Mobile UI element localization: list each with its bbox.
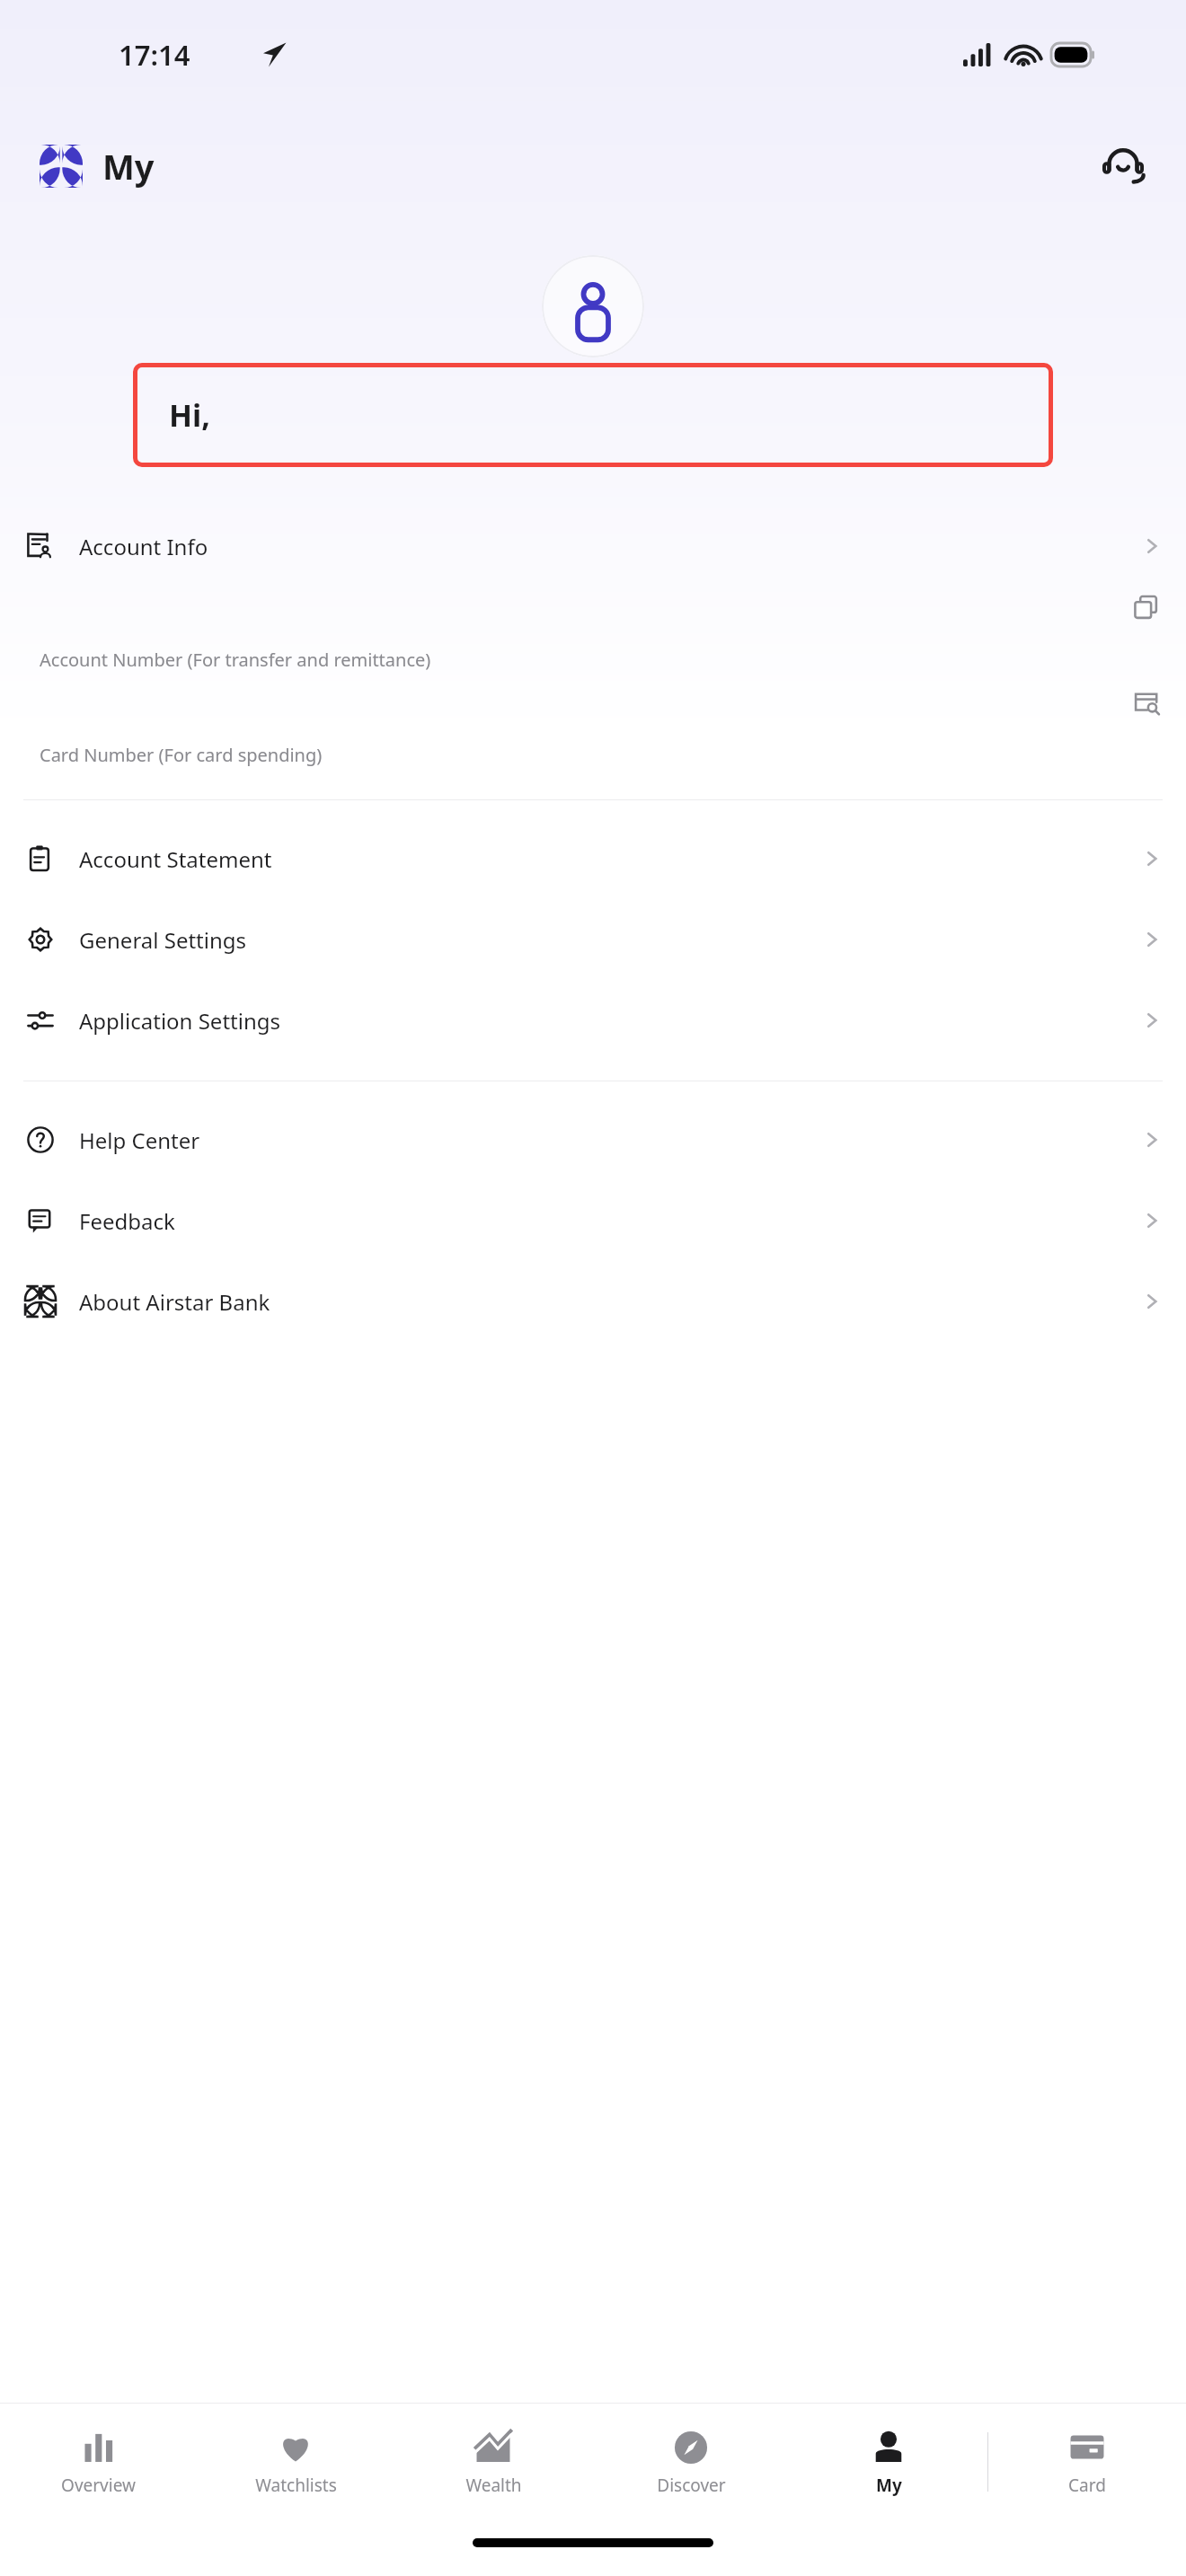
button[interactable]: About Airstar Bank [0, 1261, 1186, 1342]
button[interactable]: Customer service [1096, 139, 1150, 193]
staticText: My [102, 143, 155, 190]
staticText: Card [1068, 2474, 1106, 2497]
button[interactable]: Account Statement [0, 818, 1186, 899]
button[interactable]: Hi, [133, 363, 1053, 467]
staticText: Wealth [465, 2474, 522, 2497]
staticText: Account Statement [79, 844, 1139, 874]
staticText: Feedback [79, 1206, 1139, 1236]
button[interactable]: Account Info [0, 503, 1186, 589]
button[interactable]: Card [988, 2420, 1186, 2504]
staticText: Account Number (For transfer and remitta… [40, 648, 431, 672]
staticText: Overview [61, 2474, 136, 2497]
button[interactable]: Feedback [0, 1180, 1186, 1261]
staticText: Application Settings [79, 1006, 1139, 1036]
staticText: Hi, [169, 394, 210, 436]
staticText: Help Center [79, 1125, 1139, 1155]
button[interactable]: Application Settings [0, 980, 1186, 1061]
staticText: My [876, 2474, 902, 2497]
staticText: Discover [657, 2474, 726, 2497]
staticText: Account Info [79, 532, 1139, 561]
button[interactable]: Help Center [0, 1099, 1186, 1180]
staticText: General Settings [79, 925, 1139, 955]
button[interactable]: Card Number (For card spending) [0, 684, 1186, 780]
staticText: Watchlists [255, 2474, 337, 2497]
button[interactable]: General Settings [0, 899, 1186, 980]
button[interactable]: My [790, 2420, 987, 2504]
button[interactable]: Wealth [394, 2420, 592, 2504]
button[interactable]: Profile avatar [542, 255, 644, 357]
button[interactable]: Discover [592, 2420, 790, 2504]
button[interactable]: My [40, 143, 155, 190]
staticText: 17:14 [119, 36, 190, 74]
button[interactable]: Account Number (For transfer and remitta… [0, 589, 1186, 684]
button[interactable]: Overview [0, 2420, 197, 2504]
staticText: Card Number (For card spending) [40, 743, 323, 767]
staticText: About Airstar Bank [79, 1287, 1139, 1317]
button[interactable]: Watchlists [197, 2420, 394, 2504]
